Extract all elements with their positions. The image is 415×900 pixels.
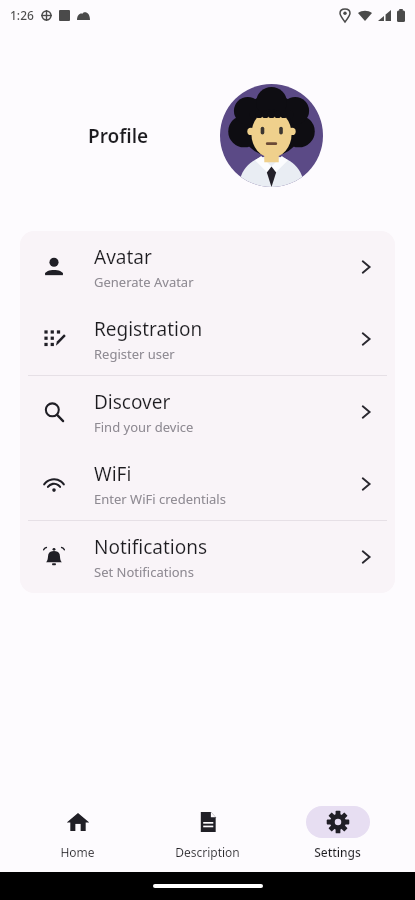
button[interactable]: Description: [155, 802, 260, 864]
staticText: Register user: [94, 345, 175, 363]
staticText: Set Notifications: [94, 563, 194, 581]
staticText: WiFi: [94, 461, 132, 487]
button[interactable]: Notifications: [20, 521, 395, 593]
button[interactable]: WiFi: [20, 448, 395, 520]
button[interactable]: Registration: [20, 303, 395, 375]
staticText: Enter WiFi credentials: [94, 490, 226, 508]
button[interactable]: Home: [25, 802, 130, 864]
button[interactable]: Settings: [285, 802, 390, 864]
staticText: Avatar: [94, 244, 152, 270]
staticText: Discover: [94, 389, 171, 415]
button[interactable]: Avatar: [20, 231, 395, 303]
staticText: Find your device: [94, 418, 194, 436]
button[interactable]: Discover: [20, 376, 395, 448]
staticText: Registration: [94, 316, 203, 342]
staticText: Notifications: [94, 534, 208, 560]
staticText: Home: [60, 844, 95, 860]
staticText: Description: [175, 844, 240, 860]
button[interactable]: Profile avatar: [220, 84, 323, 187]
staticText: Profile: [88, 123, 149, 149]
staticText: Generate Avatar: [94, 273, 194, 291]
staticText: 1:26: [10, 7, 34, 23]
staticText: Settings: [314, 844, 361, 860]
